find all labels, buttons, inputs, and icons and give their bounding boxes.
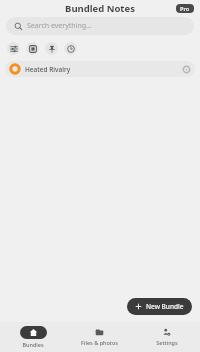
button[interactable]: Search everything... xyxy=(6,17,194,35)
staticText: Bundles xyxy=(22,341,44,348)
button[interactable]: Bundles xyxy=(0,322,66,352)
staticText: Search everything... xyxy=(27,21,92,31)
staticText: Bundled Notes xyxy=(65,2,135,15)
button[interactable]: Heated Rivalry xyxy=(5,61,195,77)
button[interactable]: New Bundle xyxy=(127,298,192,315)
button[interactable]: Pinned xyxy=(45,42,58,55)
staticText: Pro xyxy=(180,5,190,12)
button[interactable]: Files & photos xyxy=(66,322,133,352)
staticText: Files & photos xyxy=(81,339,118,346)
button[interactable]: Settings xyxy=(133,322,200,352)
button[interactable]: Sort and filter xyxy=(7,42,20,55)
staticText: Heated Rivalry xyxy=(25,65,71,74)
staticText: New Bundle xyxy=(146,302,184,311)
staticText: Settings xyxy=(156,339,178,346)
button[interactable]: Layout xyxy=(26,42,39,55)
button[interactable]: Recent xyxy=(64,42,77,55)
button[interactable]: Pro xyxy=(176,4,194,13)
